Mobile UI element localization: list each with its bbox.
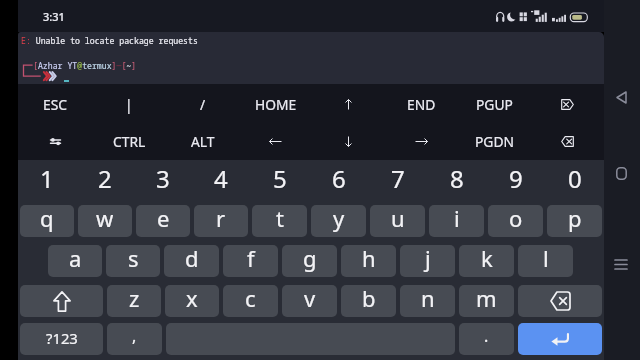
staticText: 9 <box>509 162 523 195</box>
button[interactable]: e <box>136 205 190 237</box>
button[interactable]: ALT <box>166 122 239 160</box>
staticText: x <box>186 285 198 313</box>
button[interactable]: y <box>311 205 366 237</box>
button[interactable]: z <box>107 285 161 317</box>
button[interactable]: Back <box>610 86 632 108</box>
button[interactable]: a <box>48 245 102 277</box>
button[interactable]: HOME <box>239 84 312 122</box>
button[interactable]: Recent apps <box>610 253 632 275</box>
staticText: . <box>484 325 489 347</box>
button[interactable]: | <box>92 84 166 122</box>
staticText: l <box>543 245 549 273</box>
button[interactable]: 5 <box>250 160 309 205</box>
staticText: HOME <box>255 95 297 114</box>
staticText: PGUP <box>476 95 513 114</box>
button[interactable]: j <box>400 245 455 277</box>
button[interactable]: LEFT <box>239 122 312 160</box>
staticText: 5 <box>273 162 287 195</box>
button[interactable]: / <box>166 84 239 122</box>
button[interactable]: s <box>106 245 160 277</box>
staticText: PGDN <box>475 132 514 151</box>
staticText: v <box>304 285 316 313</box>
staticText: c <box>245 285 256 313</box>
button[interactable]: RIGHT <box>385 122 458 160</box>
button[interactable]: u <box>370 205 425 237</box>
button[interactable]: BKSP <box>531 122 604 160</box>
staticText: i <box>454 205 460 233</box>
button[interactable]: l <box>518 245 573 277</box>
button[interactable]: ?123 <box>20 323 103 355</box>
button[interactable]: 2 <box>76 160 134 205</box>
button[interactable]: m <box>459 285 514 317</box>
staticText: 6 <box>332 162 346 195</box>
button[interactable]: Home <box>610 162 632 184</box>
staticText: | <box>125 95 133 114</box>
staticText: e <box>157 205 170 233</box>
button[interactable]: Backspace <box>518 285 602 317</box>
button[interactable]: 3 <box>134 160 192 205</box>
staticText: q <box>40 205 54 233</box>
button[interactable]: c <box>223 285 278 317</box>
button[interactable]: i <box>429 205 484 237</box>
button[interactable]: 6 <box>309 160 368 205</box>
button[interactable]: ESC <box>18 84 92 122</box>
staticText: [Azhar YT@termux]─[~] <box>33 60 137 71</box>
staticText: , <box>132 325 137 347</box>
button[interactable]: v <box>282 285 337 317</box>
staticText: r <box>216 205 226 233</box>
button[interactable]: 8 <box>427 160 486 205</box>
staticText: j <box>425 245 431 273</box>
button[interactable]: h <box>341 245 396 277</box>
button[interactable]: 1 <box>18 160 76 205</box>
staticText: a <box>69 245 82 273</box>
button[interactable]: q <box>20 205 74 237</box>
button[interactable]: 7 <box>368 160 427 205</box>
staticText: w <box>96 205 114 233</box>
button[interactable]: DEL <box>531 84 604 122</box>
button[interactable]: n <box>400 285 455 317</box>
staticText: 8 <box>450 162 464 195</box>
button[interactable]: k <box>459 245 514 277</box>
staticText: p <box>568 205 582 233</box>
staticText: z <box>129 285 140 313</box>
button[interactable]: 0 <box>545 160 604 205</box>
staticText: 4 <box>214 162 228 195</box>
button[interactable]: d <box>164 245 219 277</box>
button[interactable]: PGDN <box>458 122 531 160</box>
button[interactable]: UP <box>312 84 385 122</box>
button[interactable]: Enter <box>518 323 602 355</box>
button[interactable]: x <box>165 285 219 317</box>
button[interactable]: f <box>223 245 278 277</box>
button[interactable]: g <box>282 245 337 277</box>
staticText: f <box>247 245 255 273</box>
button[interactable]: b <box>341 285 396 317</box>
button[interactable]: p <box>547 205 602 237</box>
button[interactable]: o <box>488 205 543 237</box>
staticText: h <box>362 245 376 273</box>
button[interactable]: 4 <box>192 160 250 205</box>
button[interactable]: . <box>459 323 514 355</box>
staticText: d <box>185 245 199 273</box>
staticText: g <box>303 245 317 273</box>
staticText: u <box>391 205 405 233</box>
staticText: END <box>407 95 436 114</box>
button[interactable]: Shift <box>20 285 103 317</box>
button[interactable]: CTRL <box>92 122 166 160</box>
button[interactable]: t <box>252 205 307 237</box>
staticText: y <box>333 205 345 233</box>
staticText: m <box>476 285 497 313</box>
button[interactable]: DOWN <box>312 122 385 160</box>
staticText: n <box>421 285 435 313</box>
button[interactable]: END <box>385 84 458 122</box>
staticText: k <box>481 245 493 273</box>
button[interactable]: PGUP <box>458 84 531 122</box>
button[interactable]: r <box>194 205 248 237</box>
staticText: / <box>200 95 206 114</box>
button[interactable]: 9 <box>486 160 545 205</box>
button[interactable]: TAB <box>18 122 92 160</box>
staticText: o <box>509 205 523 233</box>
staticText: ALT <box>191 132 215 151</box>
button[interactable]: , <box>107 323 162 355</box>
button[interactable]: w <box>78 205 132 237</box>
